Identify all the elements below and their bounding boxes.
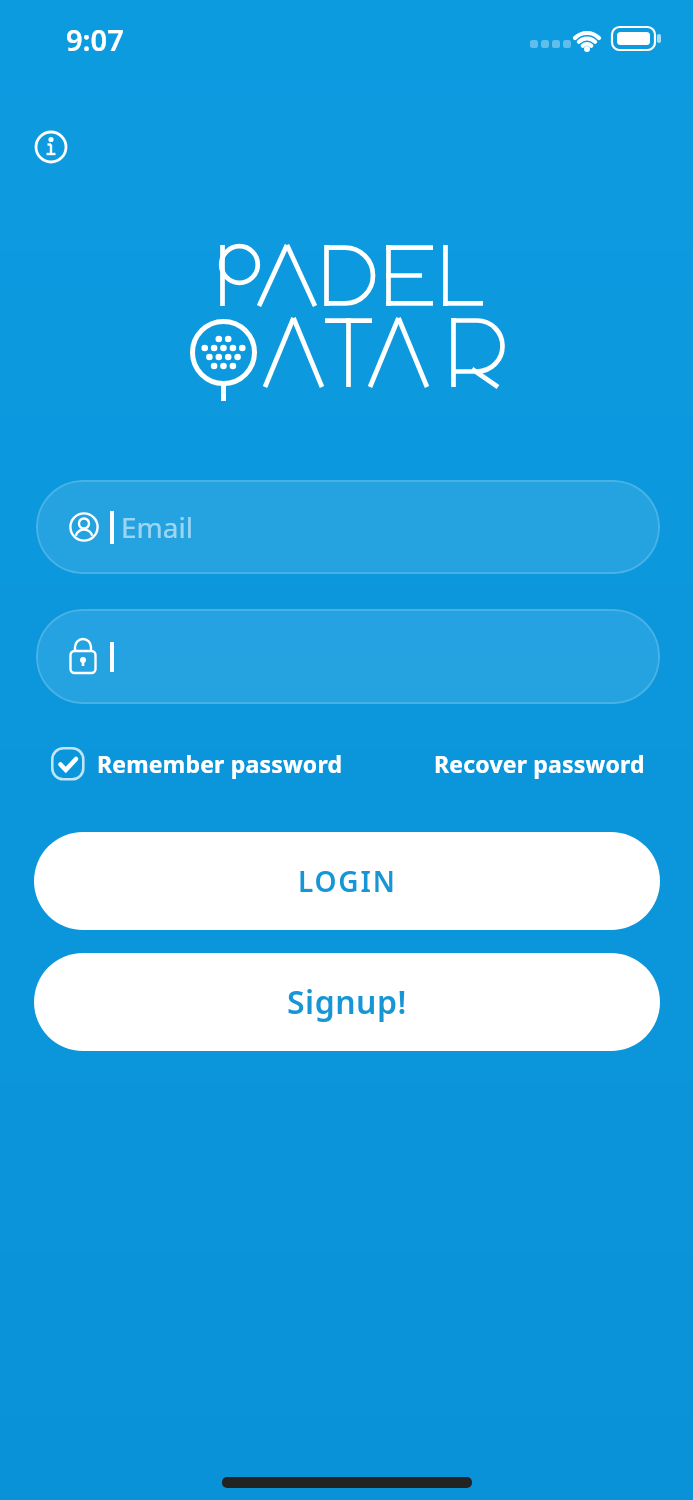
button[interactable] <box>33 129 69 165</box>
button[interactable]: Signup! <box>34 953 660 1051</box>
button[interactable]: Email <box>36 480 660 574</box>
button[interactable]: Remember password <box>51 747 343 780</box>
staticText: 9:07 <box>66 20 124 59</box>
staticText: LOGIN <box>298 862 397 900</box>
staticText: Remember password <box>97 748 343 779</box>
staticText: Signup! <box>287 980 407 1024</box>
button[interactable] <box>36 609 660 704</box>
button[interactable]: LOGIN <box>34 832 660 930</box>
staticText: Recover password <box>434 748 645 779</box>
button[interactable]: Recover password <box>434 748 645 779</box>
staticText: Email <box>121 508 193 546</box>
